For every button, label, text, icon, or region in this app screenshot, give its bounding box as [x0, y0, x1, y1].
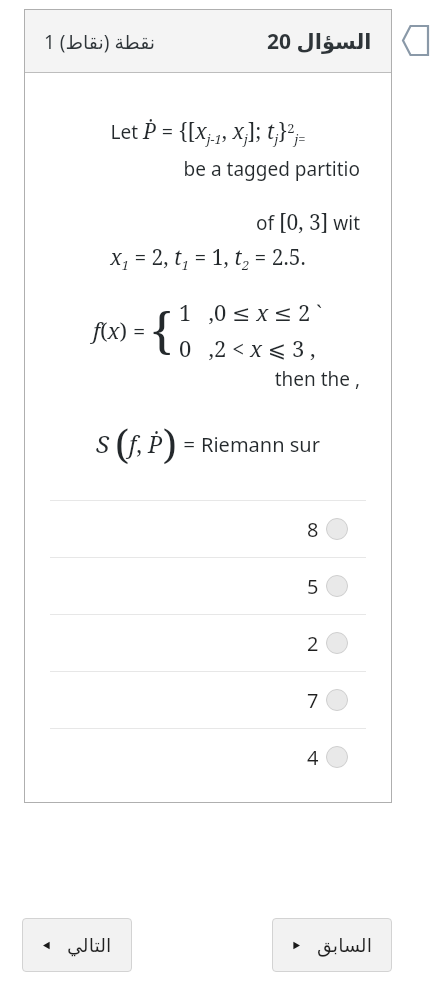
button[interactable]: 8 — [50, 501, 366, 557]
staticText: S — [96, 427, 110, 460]
staticText: 0 ,2 < x ⩽ 3 , — [179, 333, 316, 363]
button[interactable]: 7 — [50, 672, 366, 728]
staticText: السابق — [317, 934, 372, 956]
staticText: then the , — [30, 366, 360, 392]
staticText: be a tagged partitio — [30, 156, 360, 182]
button[interactable]: 2 — [50, 615, 366, 671]
staticText: 8 — [307, 516, 319, 543]
staticText: 7 — [307, 687, 319, 714]
staticText: = Riemann sur — [183, 428, 320, 458]
staticText: 5 — [307, 573, 319, 600]
button[interactable]: 4 — [50, 729, 366, 785]
staticText: { — [151, 296, 173, 364]
staticText: f, Ṗ — [129, 428, 163, 459]
staticText: 1 نقطة (نقاط) — [44, 29, 156, 55]
staticText: السؤال 20 — [267, 27, 372, 56]
staticText: 1 ,0 ≤ x ≤ 2 ` — [179, 297, 323, 327]
staticText: ) — [163, 416, 177, 470]
button[interactable]: التالي — [22, 918, 132, 972]
staticText: التالي — [67, 934, 112, 956]
button[interactable]: Flag question — [400, 23, 430, 57]
staticText: x1 = 2, t1 = 1, t2 = 2.5. — [30, 243, 386, 274]
staticText: ( — [115, 416, 129, 470]
staticText: 4 — [307, 744, 319, 771]
button[interactable]: 1 نقطة (نقاط) — [24, 9, 392, 73]
button[interactable]: السابق — [272, 918, 392, 972]
staticText: 2 — [307, 630, 319, 657]
staticText: f(x) = — [93, 315, 151, 345]
staticText: Let Ṗ = {[xj−1, xj]; tj}2j= — [30, 117, 386, 148]
button[interactable]: 5 — [50, 558, 366, 614]
staticText: of [0, 3] wit — [30, 208, 360, 237]
